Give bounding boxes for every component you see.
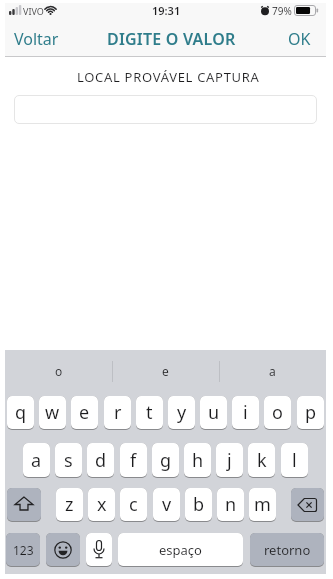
staticText: o (272, 400, 283, 425)
staticText: u (208, 400, 220, 425)
button[interactable] (291, 488, 324, 522)
button[interactable]: f (120, 443, 147, 478)
button[interactable]: z (56, 488, 83, 522)
staticText: l (292, 448, 297, 473)
button[interactable] (14, 95, 317, 124)
button[interactable]: j (216, 443, 243, 478)
staticText: w (45, 400, 60, 425)
button[interactable]: d (87, 443, 114, 478)
staticText: i (243, 400, 248, 425)
staticText: m (254, 492, 271, 517)
button[interactable]: q (7, 396, 34, 430)
staticText: a (269, 363, 276, 379)
staticText: OK (288, 28, 311, 50)
button[interactable]: w (39, 396, 66, 430)
button[interactable]: o (264, 396, 291, 430)
staticText: k (257, 448, 267, 473)
staticText: retorno (264, 541, 311, 559)
staticText: q (15, 400, 27, 425)
button[interactable]: v (153, 488, 180, 522)
button[interactable]: e (112, 352, 219, 390)
staticText: f (130, 448, 137, 473)
staticText: g (160, 448, 172, 473)
staticText: e (162, 363, 169, 379)
staticText: o (55, 363, 63, 379)
button[interactable]: b (185, 488, 212, 522)
button[interactable]: m (249, 488, 276, 522)
button[interactable]: y (168, 396, 195, 430)
button[interactable]: c (120, 488, 147, 522)
button[interactable]: n (217, 488, 244, 522)
staticText: Voltar (14, 28, 59, 50)
button[interactable]: e (71, 396, 98, 430)
staticText: 123 (13, 542, 34, 558)
staticText: e (79, 400, 90, 425)
staticText: c (129, 492, 138, 517)
button[interactable]: x (88, 488, 115, 522)
button[interactable]: t (136, 396, 163, 430)
button[interactable]: u (200, 396, 227, 430)
button[interactable] (46, 533, 80, 567)
staticText: DIGITE O VALOR (107, 28, 236, 50)
staticText: j (227, 448, 232, 473)
staticText: VIVO (23, 5, 44, 17)
button[interactable] (86, 533, 112, 567)
staticText: z (65, 492, 74, 517)
staticText: v (162, 492, 172, 517)
button[interactable]: r (104, 396, 131, 430)
staticText: d (95, 448, 107, 473)
staticText: 19:31 (152, 3, 181, 17)
staticText: a (31, 448, 42, 473)
button[interactable]: h (184, 443, 211, 478)
button[interactable]: g (152, 443, 179, 478)
button[interactable]: a (23, 443, 50, 478)
staticText: t (146, 400, 153, 425)
button[interactable]: retorno (250, 533, 324, 567)
button[interactable]: p (297, 396, 324, 430)
staticText: b (193, 492, 205, 517)
button[interactable]: 123 (6, 533, 40, 567)
button[interactable]: k (248, 443, 275, 478)
button[interactable]: a (219, 352, 326, 390)
button[interactable]: espaço (118, 533, 243, 567)
staticText: n (225, 492, 237, 517)
staticText: 79% (272, 4, 292, 18)
staticText: y (177, 400, 187, 425)
staticText: h (192, 448, 204, 473)
staticText: x (97, 492, 107, 517)
staticText: p (305, 400, 317, 425)
button[interactable]: OK (255, 28, 311, 50)
staticText: espaço (159, 541, 202, 559)
button[interactable]: i (232, 396, 259, 430)
button[interactable]: Voltar (14, 28, 70, 50)
staticText: r (114, 400, 122, 425)
staticText: LOCAL PROVÁVEL CAPTURA (77, 68, 260, 86)
staticText: s (64, 448, 73, 473)
button[interactable] (7, 488, 41, 522)
button[interactable]: o (5, 352, 112, 390)
button[interactable]: l (281, 443, 308, 478)
button[interactable]: s (55, 443, 82, 478)
